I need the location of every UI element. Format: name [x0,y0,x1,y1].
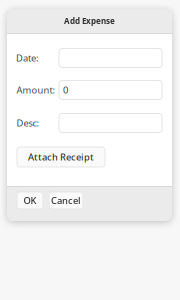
staticText: Add Expense [64,16,115,26]
staticText: 0 [63,84,68,96]
staticText: Cancel [51,194,81,207]
staticText: OK [23,194,36,207]
staticText: Desc: [16,117,39,129]
button[interactable]: OK [17,192,43,209]
staticText: Amount: [16,84,55,96]
staticText: Attach Receipt [28,151,94,163]
staticText: Date: [16,52,39,64]
button[interactable]: Cancel [49,192,83,209]
button[interactable]: Attach Receipt [17,147,105,167]
